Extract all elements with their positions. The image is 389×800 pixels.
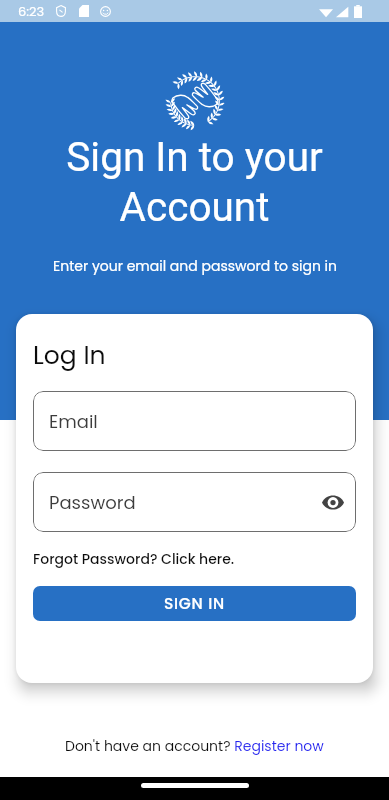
- button[interactable]: Email: [33, 391, 356, 451]
- button[interactable]: Don't have an account? Register now: [65, 736, 324, 756]
- button[interactable]: Password: [33, 472, 356, 532]
- staticText: SIGN IN: [164, 593, 225, 615]
- button[interactable]: Forgot Password? Click here.: [33, 549, 235, 569]
- button[interactable]: SIGN IN: [33, 586, 356, 621]
- staticText: Log In: [33, 338, 106, 373]
- staticText: Password: [49, 490, 136, 515]
- button[interactable]: Show password: [320, 489, 346, 515]
- staticText: Enter your email and password to sign in: [53, 256, 337, 276]
- staticText: 6:23: [18, 2, 45, 20]
- staticText: Sign In to your Account: [66, 133, 323, 230]
- staticText: Email: [49, 409, 98, 434]
